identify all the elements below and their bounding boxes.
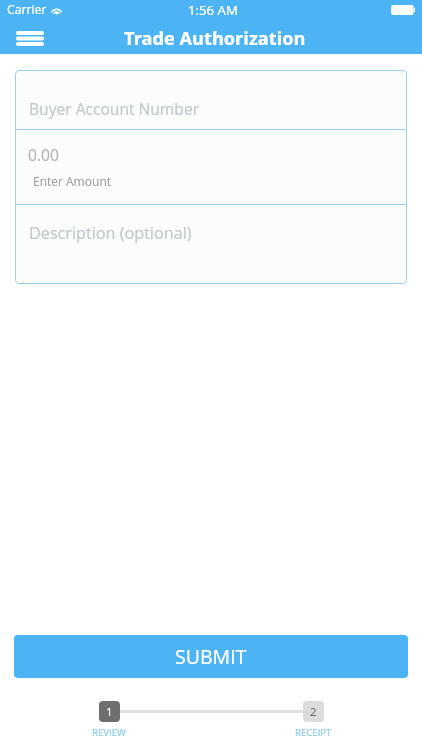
staticText: 1:56 AM [188,1,238,19]
button[interactable]: Open navigation menu [16,25,50,51]
button[interactable]: Description (optional) [15,205,407,284]
staticText: Buyer Account Number [29,98,200,119]
staticText: Carrier [7,1,47,18]
button[interactable]: 2 [303,701,324,722]
staticText: 0.00 [28,144,59,165]
staticText: 1 [106,704,113,720]
button[interactable]: SUBMIT [14,635,408,678]
button[interactable]: 1 [99,701,120,722]
button[interactable]: 0.00 [15,130,407,204]
staticText: Enter Amount [33,173,111,189]
button[interactable]: Buyer Account Number [15,70,407,129]
staticText: Description (optional) [29,222,192,244]
staticText: RECEIPT [295,726,332,739]
staticText: 2 [310,704,317,720]
staticText: Trade Authorization [124,26,306,51]
staticText: REVIEW [92,726,126,739]
staticText: SUBMIT [175,643,247,670]
